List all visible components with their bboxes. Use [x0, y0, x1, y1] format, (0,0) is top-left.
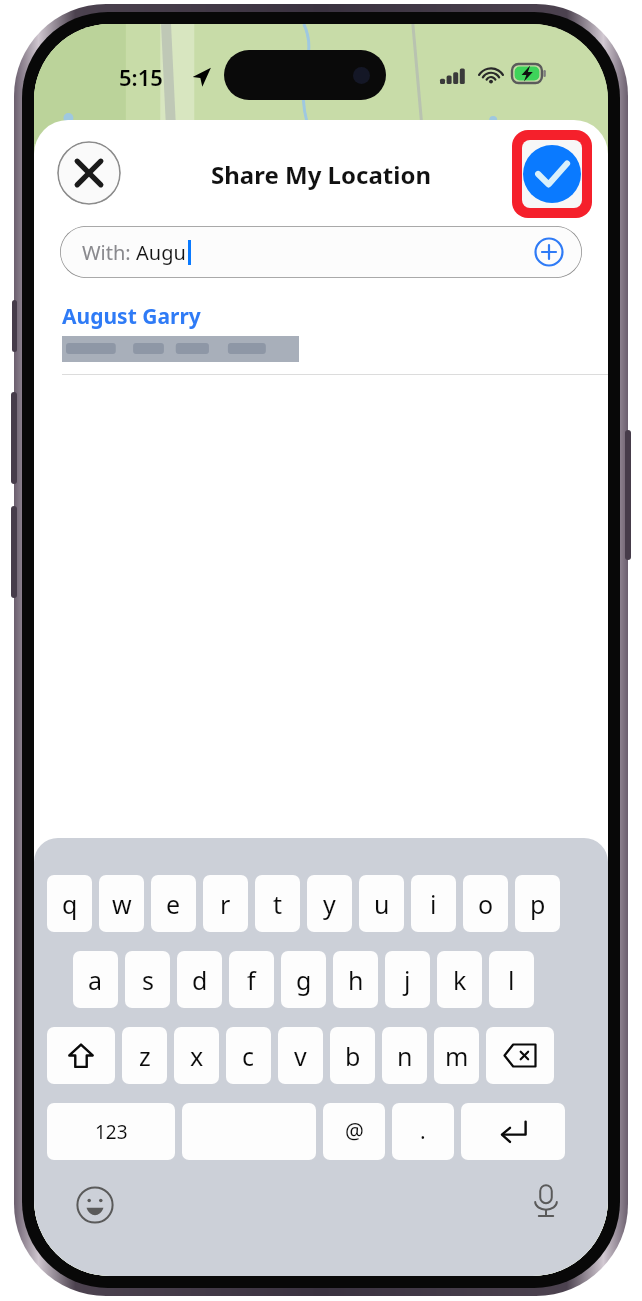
staticText: August Garry: [62, 302, 201, 331]
button[interactable]: Close: [57, 141, 121, 205]
button[interactable]: Shift: [47, 1027, 115, 1084]
button[interactable]: w: [99, 875, 144, 932]
button[interactable]: p: [515, 875, 560, 932]
staticText: o: [478, 887, 494, 921]
button[interactable]: g: [281, 951, 326, 1008]
button[interactable]: c: [226, 1027, 271, 1084]
button[interactable]: j: [385, 951, 430, 1008]
staticText: b: [345, 1039, 361, 1073]
button[interactable]: k: [437, 951, 482, 1008]
staticText: y: [323, 887, 336, 921]
staticText: p: [530, 887, 546, 921]
button[interactable]: a: [73, 951, 118, 1008]
staticText: q: [62, 887, 78, 921]
button[interactable]: .: [392, 1103, 454, 1160]
staticText: f: [247, 963, 256, 997]
button[interactable]: t: [255, 875, 300, 932]
staticText: 123: [95, 1119, 128, 1145]
button[interactable]: d: [177, 951, 222, 1008]
button[interactable]: l: [489, 951, 534, 1008]
staticText: h: [348, 963, 364, 997]
staticText: c: [242, 1039, 255, 1073]
staticText: v: [294, 1039, 307, 1073]
staticText: u: [374, 887, 390, 921]
button[interactable]: f: [229, 951, 274, 1008]
button[interactable]: Add contact: [534, 237, 564, 267]
staticText: Share My Location: [211, 158, 431, 191]
button[interactable]: August Garry: [62, 302, 608, 375]
button[interactable]: Dictation: [528, 1183, 564, 1219]
button[interactable]: z: [122, 1027, 167, 1084]
staticText: Augu: [136, 239, 186, 266]
button[interactable]: [182, 1103, 316, 1160]
button[interactable]: With:: [60, 226, 582, 278]
button[interactable]: o: [463, 875, 508, 932]
staticText: e: [166, 887, 181, 921]
button[interactable]: x: [174, 1027, 219, 1084]
staticText: @: [345, 1117, 364, 1146]
button[interactable]: y: [307, 875, 352, 932]
staticText: r: [220, 887, 231, 921]
staticText: z: [139, 1039, 151, 1073]
button[interactable]: e: [151, 875, 196, 932]
button[interactable]: @: [323, 1103, 385, 1160]
button[interactable]: Emoji: [76, 1186, 114, 1224]
staticText: t: [273, 887, 283, 921]
staticText: m: [445, 1039, 469, 1073]
staticText: s: [142, 963, 154, 997]
button[interactable]: m: [434, 1027, 479, 1084]
staticText: 5:15: [119, 62, 163, 92]
staticText: a: [88, 963, 103, 997]
button[interactable]: 123: [47, 1103, 175, 1160]
button[interactable]: v: [278, 1027, 323, 1084]
button[interactable]: n: [382, 1027, 427, 1084]
button[interactable]: Return: [461, 1103, 565, 1160]
staticText: j: [404, 963, 411, 997]
staticText: i: [430, 887, 437, 921]
staticText: w: [112, 887, 132, 921]
staticText: x: [190, 1039, 204, 1073]
staticText: With:: [82, 239, 136, 266]
staticText: k: [453, 963, 467, 997]
staticText: g: [296, 963, 312, 997]
staticText: .: [420, 1117, 426, 1146]
button[interactable]: Done: [522, 140, 582, 208]
button[interactable]: r: [203, 875, 248, 932]
button[interactable]: s: [125, 951, 170, 1008]
button[interactable]: b: [330, 1027, 375, 1084]
button[interactable]: i: [411, 875, 456, 932]
staticText: l: [508, 963, 515, 997]
staticText: d: [192, 963, 208, 997]
staticText: n: [397, 1039, 413, 1073]
button[interactable]: q: [47, 875, 92, 932]
button[interactable]: h: [333, 951, 378, 1008]
button[interactable]: u: [359, 875, 404, 932]
button[interactable]: Backspace: [486, 1027, 554, 1084]
